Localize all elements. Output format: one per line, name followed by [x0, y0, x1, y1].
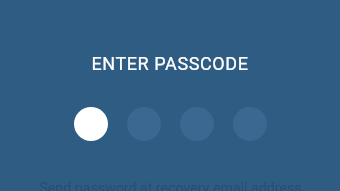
staticText: ENTER PASSCODE [91, 53, 249, 74]
staticText: Send password at recovery email address [39, 180, 302, 191]
button[interactable]: Send password at recovery email address [0, 180, 340, 191]
other: Passcode digit 4 empty [233, 107, 267, 141]
other: Passcode digit 3 empty [180, 107, 214, 141]
other: Passcode digit 1 entered [74, 107, 108, 141]
other: Passcode digit 2 empty [127, 107, 161, 141]
